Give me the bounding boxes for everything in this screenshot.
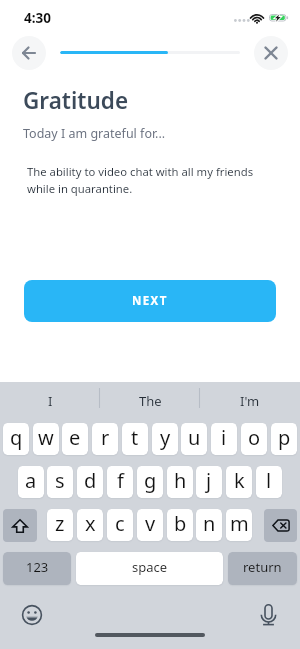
button[interactable]: d (77, 466, 103, 498)
staticText: Today I am grateful for... (23, 125, 166, 142)
staticText: c (115, 510, 125, 537)
button[interactable]: 123 (3, 552, 71, 585)
staticText: w (38, 424, 54, 451)
button[interactable]: I (0, 385, 100, 417)
button[interactable]: i (211, 423, 237, 455)
staticText: n (203, 510, 216, 537)
button[interactable]: a (18, 466, 44, 498)
button[interactable]: y (152, 423, 178, 455)
button[interactable]: o (241, 423, 267, 455)
staticText: t (131, 424, 139, 451)
button[interactable]: s (47, 466, 73, 498)
button[interactable]: l (256, 466, 282, 498)
staticText: m (230, 510, 249, 537)
staticText: v (145, 510, 156, 537)
staticText: h (174, 467, 187, 494)
staticText: 4:30 (24, 9, 51, 27)
staticText: z (55, 510, 65, 537)
button[interactable]: u (181, 423, 207, 455)
staticText: o (248, 424, 261, 451)
staticText: The ability to video chat with all my fr… (27, 164, 263, 196)
staticText: The (139, 392, 162, 410)
staticText: return (243, 558, 282, 576)
button[interactable]: Emoji (18, 601, 46, 629)
staticText: p (278, 424, 291, 451)
staticText: Gratitude (23, 85, 129, 116)
button[interactable]: q (3, 423, 29, 455)
button[interactable]: r (92, 423, 118, 455)
button[interactable]: Voice input (254, 601, 282, 629)
button[interactable]: Backspace (264, 509, 297, 542)
staticText: y (160, 424, 171, 451)
staticText: j (206, 467, 212, 494)
staticText: k (234, 467, 245, 494)
button[interactable]: e (62, 423, 88, 455)
button[interactable]: x (77, 509, 103, 541)
staticText: I'm (240, 392, 260, 410)
button[interactable]: The (100, 385, 200, 417)
staticText: a (25, 467, 37, 494)
button[interactable]: Close (254, 36, 288, 70)
staticText: space (132, 558, 168, 576)
button[interactable]: c (107, 509, 133, 541)
button[interactable]: NEXT (24, 280, 276, 322)
staticText: 123 (26, 558, 49, 576)
button[interactable]: t (122, 423, 148, 455)
staticText: I (48, 392, 53, 410)
button[interactable]: Back (12, 36, 46, 70)
staticText: g (144, 467, 157, 494)
button[interactable]: k (226, 466, 252, 498)
staticText: s (55, 467, 65, 494)
button[interactable]: z (47, 509, 73, 541)
staticText: r (101, 424, 110, 451)
button[interactable]: I'm (200, 385, 300, 417)
staticText: i (221, 424, 227, 451)
staticText: q (10, 424, 23, 451)
staticText: f (117, 467, 124, 494)
button[interactable]: b (167, 509, 193, 541)
button[interactable]: p (271, 423, 297, 455)
button[interactable]: space (76, 552, 223, 585)
button[interactable]: n (196, 509, 222, 541)
button[interactable]: f (107, 466, 133, 498)
button[interactable]: j (196, 466, 222, 498)
button[interactable]: h (167, 466, 193, 498)
button[interactable]: m (226, 509, 252, 541)
button[interactable]: return (228, 552, 297, 585)
button[interactable]: Shift (3, 509, 37, 542)
staticText: u (188, 424, 201, 451)
staticText: b (174, 510, 187, 537)
staticText: l (266, 467, 272, 494)
staticText: d (84, 467, 97, 494)
staticText: x (85, 510, 96, 537)
button[interactable]: g (137, 466, 163, 498)
button[interactable]: v (137, 509, 163, 541)
staticText: NEXT (132, 293, 168, 309)
button[interactable]: w (33, 423, 59, 455)
staticText: e (69, 424, 81, 451)
